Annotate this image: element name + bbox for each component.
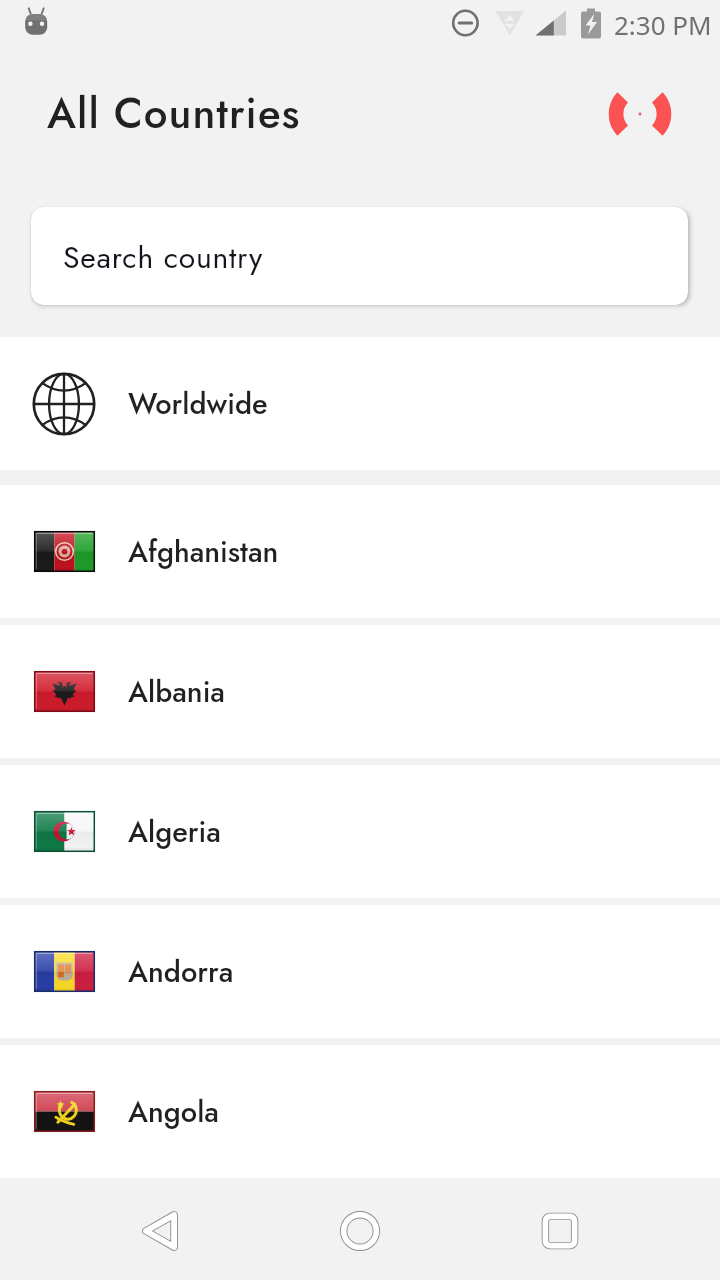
- button[interactable]: Albania: [0, 625, 720, 758]
- button[interactable]: Afghanistan: [0, 485, 720, 618]
- button[interactable]: Home: [312, 1183, 408, 1279]
- button[interactable]: Recent apps: [512, 1183, 608, 1279]
- staticText: Worldwide: [128, 383, 268, 425]
- staticText: All Countries: [47, 83, 301, 144]
- button[interactable]: Search country: [31, 207, 688, 305]
- button[interactable]: Algeria: [0, 765, 720, 898]
- button[interactable]: Worldwide: [0, 337, 720, 470]
- staticText: Algeria: [128, 811, 221, 853]
- staticText: Angola: [128, 1091, 219, 1133]
- button[interactable]: Angola: [0, 1045, 720, 1178]
- button[interactable]: Andorra: [0, 905, 720, 1038]
- button[interactable]: Live tracker: [592, 66, 688, 162]
- staticText: Andorra: [128, 951, 234, 993]
- staticText: Afghanistan: [128, 531, 279, 573]
- staticText: Albania: [128, 671, 225, 713]
- staticText: 2:30 PM: [614, 7, 712, 42]
- button[interactable]: Back: [112, 1183, 208, 1279]
- staticText: Search country: [63, 236, 263, 279]
